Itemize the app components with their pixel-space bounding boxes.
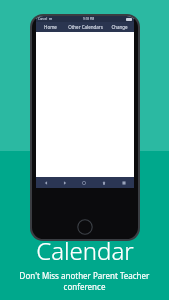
staticText: 9:18 PM — [83, 17, 95, 21]
button[interactable]: Forward — [55, 177, 74, 188]
staticText: Change — [111, 24, 128, 30]
staticText: Home — [44, 24, 57, 30]
staticText: Calendar — [36, 234, 134, 267]
button[interactable]: Recent apps — [114, 177, 134, 188]
button[interactable]: Home — [94, 177, 114, 188]
button[interactable]: Back — [36, 177, 55, 188]
button[interactable]: Refresh — [74, 177, 94, 188]
staticText: Other Calendars — [68, 24, 103, 30]
staticText: Cancel — [38, 17, 48, 21]
button[interactable]: Home button — [77, 219, 93, 235]
staticText: Don't Miss another Parent Teacher confer… — [0, 270, 169, 292]
button[interactable]: Change — [105, 22, 134, 32]
button[interactable]: Other Calendars — [65, 22, 105, 32]
button[interactable]: Home — [36, 22, 65, 32]
